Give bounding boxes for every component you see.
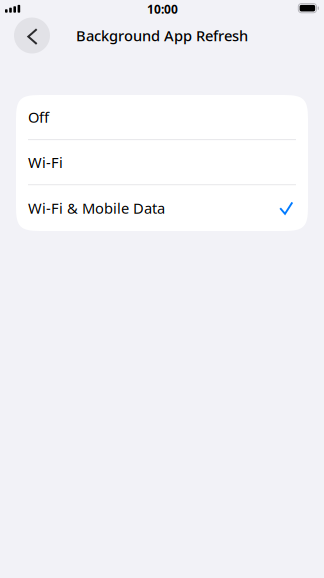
staticText: 10:00 [147, 1, 178, 17]
button[interactable]: Wi-Fi [16, 140, 308, 185]
staticText: Background App Refresh [76, 26, 248, 45]
staticText: Off [28, 107, 49, 127]
staticText: Wi-Fi [28, 152, 63, 172]
button[interactable]: Back [14, 17, 50, 53]
staticText: Wi-Fi & Mobile Data [28, 198, 165, 218]
button[interactable]: Wi-Fi & Mobile Data [16, 185, 308, 231]
button[interactable]: Off [16, 95, 308, 140]
